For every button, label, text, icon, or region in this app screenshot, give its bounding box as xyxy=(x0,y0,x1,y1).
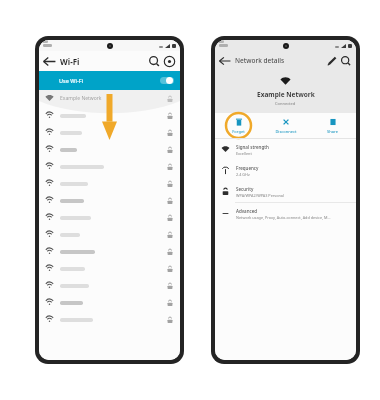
staticText: Example Network xyxy=(257,90,315,99)
button[interactable]: Search xyxy=(148,55,161,68)
button[interactable]: Frequency xyxy=(215,160,356,181)
staticText: Wi-Fi xyxy=(60,56,80,67)
button[interactable] xyxy=(39,175,180,192)
button[interactable] xyxy=(39,294,180,311)
staticText: Connected xyxy=(275,101,296,106)
button[interactable] xyxy=(39,124,180,141)
button[interactable]: Settings xyxy=(163,55,176,68)
staticText: Use Wi-Fi xyxy=(59,77,84,84)
staticText: Network usage, Proxy, Auto-connect, Add … xyxy=(236,215,331,220)
button[interactable]: Search xyxy=(340,55,352,67)
staticText: Security xyxy=(236,186,254,192)
button[interactable] xyxy=(39,243,180,260)
button[interactable] xyxy=(39,209,180,226)
button[interactable] xyxy=(39,141,180,158)
button[interactable] xyxy=(39,260,180,277)
button[interactable] xyxy=(39,107,180,124)
button[interactable] xyxy=(39,311,180,328)
button[interactable]: Forget xyxy=(215,113,262,138)
button[interactable]: Edit xyxy=(326,55,338,67)
button[interactable]: Example Network xyxy=(39,90,180,107)
staticText: Share xyxy=(327,129,338,134)
staticText: WPA/WPA2/WPA3 Personal xyxy=(236,193,284,198)
button[interactable]: Use Wi-Fi xyxy=(39,71,180,90)
staticText: Network details xyxy=(235,56,285,65)
staticText: Forget xyxy=(232,129,245,134)
staticText: Disconnect xyxy=(275,129,297,134)
button[interactable] xyxy=(39,226,180,243)
staticText: Frequency xyxy=(236,165,259,171)
button[interactable]: Disconnect xyxy=(262,113,309,138)
staticText: Signal strength xyxy=(236,144,269,150)
button[interactable]: Advanced xyxy=(215,203,356,224)
button[interactable]: Back xyxy=(219,55,231,67)
button[interactable]: Share xyxy=(309,113,356,138)
button[interactable]: Back xyxy=(43,55,56,68)
button[interactable]: Signal strength xyxy=(215,139,356,160)
button[interactable] xyxy=(39,192,180,209)
staticText: 2.4 GHz xyxy=(236,172,250,177)
button[interactable] xyxy=(39,277,180,294)
button[interactable] xyxy=(39,158,180,175)
staticText: Excellent xyxy=(236,151,252,156)
button[interactable]: Security xyxy=(215,181,356,202)
staticText: Example Network xyxy=(60,95,102,102)
staticText: Advanced xyxy=(236,208,258,214)
